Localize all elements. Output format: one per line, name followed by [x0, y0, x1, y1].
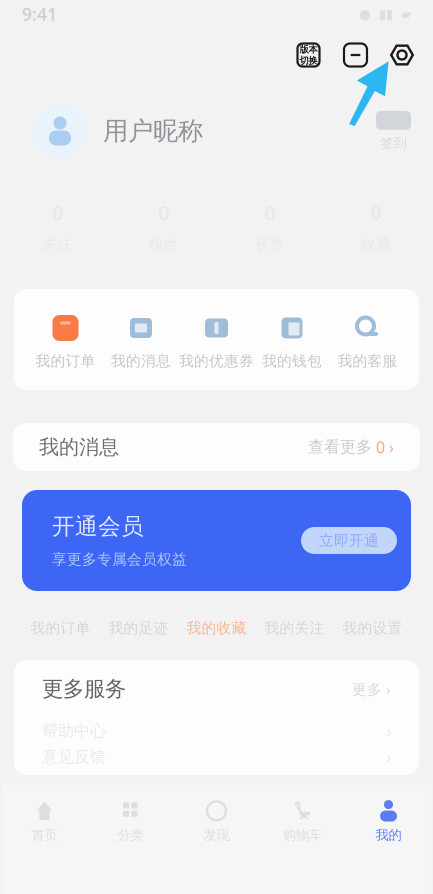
staticText: 意见反馈 — [42, 747, 106, 767]
staticText: 切换 — [299, 55, 317, 66]
button[interactable]: Minimize — [344, 43, 367, 66]
staticText: 0 — [264, 199, 275, 226]
button[interactable]: 我的关注 — [255, 616, 333, 640]
button[interactable]: 我的设置 — [333, 616, 411, 640]
staticText: 0 — [370, 199, 381, 226]
staticText: 我的设置 — [342, 619, 402, 637]
button[interactable]: 发现 — [173, 794, 259, 849]
button[interactable]: 我的消息 — [0, 423, 433, 471]
staticText: 享更多专属会员权益 — [52, 550, 187, 568]
staticText: 版本 — [299, 43, 317, 55]
staticText: ● ▮▮ ▰ — [359, 6, 411, 21]
button[interactable]: 我的客服 — [333, 289, 401, 390]
button[interactable]: 我的优惠券 — [182, 289, 250, 390]
staticText: 发现 — [203, 827, 229, 843]
button[interactable]: 立即开通 — [301, 527, 397, 554]
button[interactable]: 我的订单 — [21, 616, 99, 640]
staticText: 我的订单 — [35, 352, 95, 370]
staticText: 开通会员 — [52, 513, 144, 540]
staticText: 粉丝 — [148, 235, 178, 253]
staticText: 0 › — [372, 436, 394, 458]
staticText: 获赞 — [254, 235, 284, 253]
staticText: 我的关注 — [264, 619, 324, 637]
button[interactable]: 版本切换 — [297, 43, 319, 66]
staticText: 签到 — [380, 135, 406, 151]
staticText: 0 — [158, 199, 169, 226]
staticText: 我的 — [375, 827, 401, 843]
staticText: 我的钱包 — [262, 352, 322, 370]
staticText: › — [386, 719, 391, 742]
staticText: › — [386, 745, 391, 768]
staticText: 关注 — [42, 235, 72, 253]
button[interactable]: 用户昵称 — [33, 104, 203, 158]
staticText: 分类 — [117, 827, 143, 843]
staticText: 用户昵称 — [103, 115, 203, 146]
staticText: 帮助中心 — [42, 721, 106, 741]
button[interactable]: 我的收藏 — [177, 616, 255, 640]
button[interactable]: Settings — [388, 43, 415, 67]
button[interactable]: 意见反馈 — [14, 744, 419, 770]
staticText: 首页 — [31, 827, 57, 843]
staticText: 我的收藏 — [186, 619, 246, 637]
button[interactable]: 我的钱包 — [258, 289, 326, 390]
button[interactable]: 购物车 — [259, 794, 345, 849]
staticText: 我的优惠券 — [179, 352, 254, 370]
button[interactable]: 首页 — [1, 794, 87, 849]
button[interactable]: 更多 › — [352, 679, 391, 699]
button[interactable]: 我的 — [345, 794, 431, 849]
staticText: 更多 › — [352, 679, 391, 699]
staticText: 立即开通 — [319, 531, 379, 549]
button[interactable]: 我的订单 — [31, 289, 99, 390]
button[interactable]: 我的消息 — [107, 289, 175, 390]
staticText: 0 — [52, 199, 63, 226]
button[interactable]: 分类 — [87, 794, 173, 849]
staticText: 9:41 — [22, 2, 57, 25]
staticText: 我的消息 — [111, 352, 171, 370]
staticText: 查看更多 — [308, 437, 372, 457]
staticText: 我的客服 — [337, 352, 397, 370]
staticText: 我的消息 — [39, 435, 119, 459]
staticText: 我的足迹 — [108, 619, 168, 637]
staticText: 购物车 — [283, 827, 322, 843]
staticText: 我的订单 — [30, 619, 90, 637]
staticText: 收藏 — [360, 235, 390, 253]
button[interactable]: 签到 — [376, 111, 411, 151]
button[interactable]: 我的足迹 — [99, 616, 177, 640]
staticText: 更多服务 — [42, 676, 126, 702]
